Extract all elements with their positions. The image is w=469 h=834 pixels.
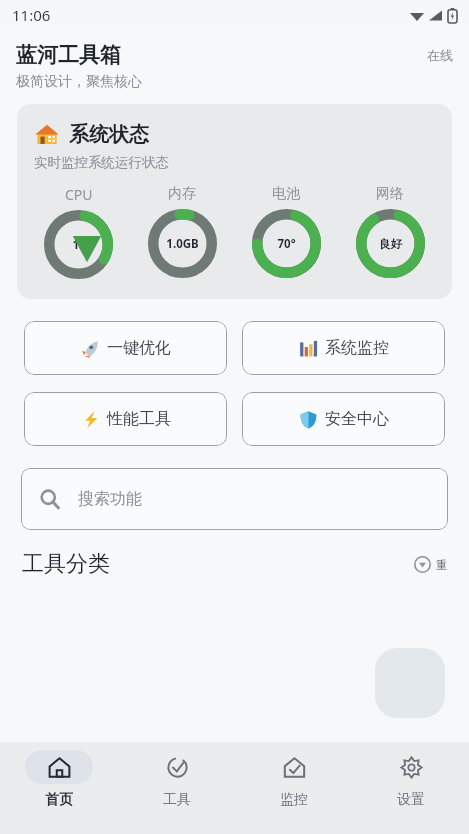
staticText: 70° — [277, 236, 296, 252]
staticText: 设置 — [397, 791, 425, 809]
staticText: 监控 — [280, 791, 308, 809]
staticText: 在线 — [427, 47, 453, 63]
button[interactable]: 工具 — [118, 742, 235, 834]
staticText: 实时监控系统运行状态 — [34, 154, 169, 171]
button[interactable]: 搜索功能 — [21, 468, 448, 530]
staticText: 19 — [72, 237, 86, 253]
staticText: 11:06 — [12, 5, 51, 25]
staticText: 首页 — [45, 791, 73, 809]
staticText: 搜索功能 — [78, 489, 142, 509]
staticText: 极简设计，聚焦核心 — [16, 73, 142, 91]
staticText: 一键优化 — [107, 338, 171, 358]
button[interactable]: 设置 — [352, 742, 469, 834]
button[interactable]: Floating action — [375, 648, 445, 718]
button[interactable]: 系统监控 — [242, 321, 445, 375]
button[interactable]: 系统状态 — [17, 104, 452, 299]
staticText: 系统状态 — [69, 122, 149, 147]
staticText: 内存 — [168, 185, 196, 203]
staticText: 良好 — [379, 237, 402, 251]
staticText: 工具分类 — [22, 550, 110, 578]
button[interactable]: 在线 — [427, 47, 453, 63]
staticText: 电池 — [272, 185, 300, 203]
staticText: 安全中心 — [325, 409, 389, 429]
button[interactable]: 性能工具 — [24, 392, 227, 446]
button[interactable]: Expand — [414, 556, 447, 573]
staticText: 蓝河工具箱 — [16, 42, 121, 68]
staticText: 重 — [436, 558, 447, 572]
button[interactable]: 监控 — [235, 742, 352, 834]
staticText: 1.0GB — [166, 236, 199, 252]
staticText: 性能工具 — [107, 409, 171, 429]
staticText: CPU — [65, 185, 93, 204]
staticText: 网络 — [376, 185, 404, 203]
staticText: 工具 — [163, 791, 191, 809]
button[interactable]: 首页 — [0, 742, 118, 834]
other: Expand — [414, 556, 431, 573]
button[interactable]: 安全中心 — [242, 392, 445, 446]
staticText: 系统监控 — [325, 338, 389, 358]
button[interactable]: 一键优化 — [24, 321, 227, 375]
